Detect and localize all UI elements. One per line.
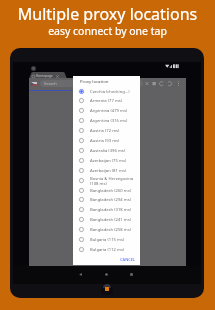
staticText: easy connect by one tap [0,24,215,38]
staticText: Azerbaijan (81 ms) [90,168,127,174]
button[interactable]: Argentina (316 ms) [73,116,140,125]
button[interactable]: Austria (93 ms) [73,136,140,145]
button[interactable]: App icon [101,283,113,295]
staticText: Azerbaijan (75 ms) [90,158,127,164]
button[interactable]: Azerbaijan (75 ms) [73,156,140,165]
staticText: Australia (396 ms) [90,148,126,154]
staticText: Argentina (316 ms) [90,118,128,124]
staticText: Czechia (checking...) [90,89,130,95]
staticText: Bangladesh (258 ms) [90,227,131,233]
button[interactable]: Recents [128,271,135,278]
staticText: CANCEL [120,257,136,262]
button[interactable]: Armenia (77 ms) [73,96,140,105]
button[interactable]: Bulgaria (115 ms) [73,235,140,244]
button[interactable]: Czechia (checking...) [73,87,140,96]
staticText: Argentina (479 ms) [90,108,128,114]
button[interactable]: Bangladesh (241 ms) [73,215,140,224]
button[interactable]: Home [103,271,110,278]
button[interactable]: Bangladesh (258 ms) [73,225,140,234]
staticText: Bangladesh (294 ms) [90,197,131,203]
staticText: Search [44,81,57,86]
staticText: Bulgaria (115 ms) [90,237,125,243]
button[interactable]: Back [77,271,84,278]
button[interactable]: Bangladesh (318 ms) [73,205,140,214]
button[interactable]: Australia (396 ms) [73,146,140,155]
staticText: Proxy location [80,79,109,85]
button[interactable]: CANCEL [120,257,136,262]
button[interactable]: Azerbaijan (81 ms) [73,166,140,175]
staticText: Bosnia & Herzegovina (108 ms) [90,176,140,185]
staticText: Armenia (77 ms) [90,98,123,104]
button[interactable]: Bulgaria (112 ms) [73,245,140,254]
staticText: Bangladesh (318 ms) [90,207,131,213]
button[interactable]: Bangladesh (260 ms) [73,186,140,195]
button[interactable]: Argentina (479 ms) [73,106,140,115]
staticText: Bangladesh (260 ms) [90,188,131,194]
staticText: Bulgaria (112 ms) [90,247,125,253]
button[interactable]: Austria (72 ms) [73,126,140,135]
staticText: Multiple proxy locations [0,3,215,25]
staticText: Austria (72 ms) [90,128,120,134]
staticText: Bangladesh (241 ms) [90,217,131,223]
button[interactable]: Bangladesh (294 ms) [73,195,140,204]
staticText: Homepage [36,74,53,78]
button[interactable]: Bosnia & Herzegovina (108 ms) [73,176,140,185]
staticText: Austria (93 ms) [90,138,120,144]
